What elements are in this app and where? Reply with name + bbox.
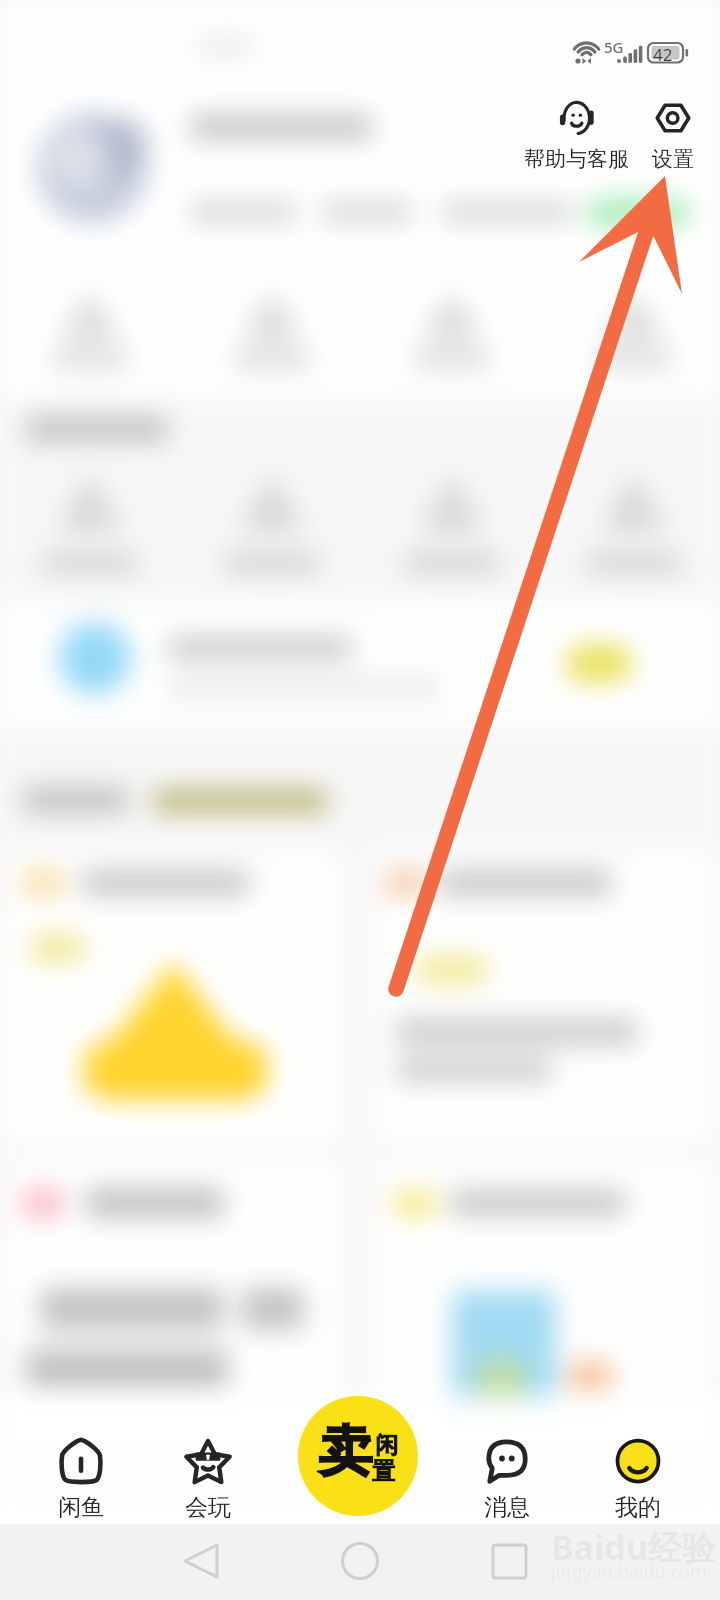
staticText: jingyan.baidu.com	[551, 1559, 707, 1584]
button[interactable]: 设置	[637, 99, 709, 172]
staticText: 卖	[318, 1418, 372, 1486]
staticText: 置	[372, 1457, 395, 1486]
staticText: 消息	[484, 1493, 530, 1522]
staticText: 闲鱼	[58, 1493, 104, 1522]
button[interactable]: 会玩	[163, 1436, 253, 1522]
button[interactable]: 帮助与客服	[515, 99, 637, 172]
staticText: 我的	[615, 1493, 661, 1522]
staticText: 42	[653, 43, 673, 66]
staticText: 会玩	[185, 1493, 231, 1522]
button[interactable]: 卖闲置	[298, 1396, 418, 1516]
button[interactable]: 消息	[462, 1436, 552, 1522]
staticText: 5G	[604, 37, 624, 57]
staticText: 闲	[375, 1431, 398, 1460]
staticText: 帮助与客服	[524, 146, 629, 172]
staticText: Baidu经验	[551, 1524, 716, 1570]
staticText: 设置	[652, 146, 694, 172]
button[interactable]: 我的	[593, 1436, 683, 1522]
button[interactable]: 闲鱼	[36, 1436, 126, 1522]
